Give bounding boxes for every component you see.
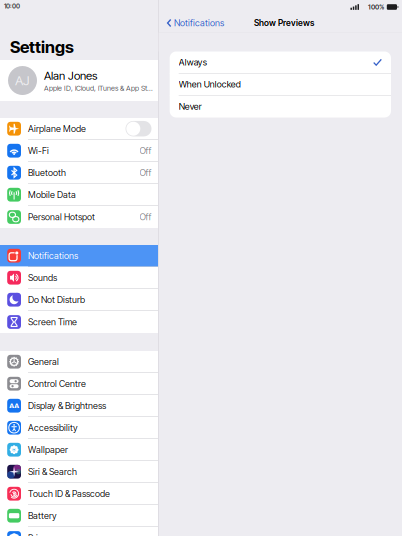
staticText: Wallpaper	[28, 444, 68, 455]
staticText: 10:00	[4, 2, 20, 10]
staticText: Sounds	[28, 272, 57, 283]
button[interactable]: Never	[170, 95, 391, 117]
button[interactable]: Personal Hotspot	[0, 206, 158, 228]
button[interactable]: Privacy	[0, 527, 158, 536]
staticText: Off	[139, 145, 151, 156]
button[interactable]: Airplane Mode	[0, 118, 158, 140]
staticText: Wi-Fi	[28, 145, 49, 156]
button[interactable]: Do Not Disturb	[0, 289, 158, 311]
staticText: Never	[179, 101, 202, 112]
button[interactable]: Touch ID & Passcode	[0, 483, 158, 505]
button[interactable]: AJ	[0, 60, 158, 101]
button[interactable]: Siri & Search	[0, 461, 158, 483]
staticText: Accessibility	[28, 422, 78, 433]
staticText: Show Previews	[254, 18, 314, 28]
staticText: Privacy	[28, 533, 56, 536]
staticText: Off	[139, 212, 151, 222]
button[interactable]: General	[0, 351, 158, 373]
button[interactable]: Battery	[0, 505, 158, 527]
button[interactable]: Notifications	[159, 14, 230, 32]
staticText: Battery	[28, 510, 57, 521]
staticText: 100%	[368, 3, 384, 11]
staticText: Siri & Search	[28, 466, 77, 477]
button[interactable]: Bluetooth	[0, 162, 158, 184]
button[interactable]: Always	[170, 51, 391, 73]
button[interactable]: Screen Time	[0, 311, 158, 333]
staticText: Settings	[10, 37, 74, 57]
button[interactable]: Wi-Fi	[0, 140, 158, 162]
staticText: AA	[9, 401, 19, 410]
button[interactable]: Mobile Data	[0, 184, 158, 206]
staticText: Alan Jones	[44, 69, 97, 82]
staticText: Mobile Data	[28, 189, 76, 200]
staticText: Notifications	[28, 250, 78, 261]
staticText: Personal Hotspot	[28, 212, 95, 222]
staticText: Display & Brightness	[28, 400, 106, 411]
button[interactable]: AA	[0, 395, 158, 417]
staticText: Bluetooth	[28, 167, 66, 178]
staticText: Touch ID & Passcode	[28, 488, 110, 499]
staticText: Screen Time	[28, 317, 77, 327]
button[interactable]: When Unlocked	[170, 73, 391, 95]
staticText: General	[28, 356, 59, 367]
staticText: When Unlocked	[179, 79, 241, 89]
staticText: Apple ID, iCloud, iTunes & App St...	[44, 84, 153, 92]
button[interactable]: Sounds	[0, 267, 158, 289]
staticText: Control Centre	[28, 378, 86, 389]
staticText: AJ	[15, 73, 30, 88]
button[interactable]: Control Centre	[0, 373, 158, 395]
button[interactable]: Accessibility	[0, 417, 158, 439]
staticText: Always	[179, 57, 207, 67]
staticText: Off	[139, 167, 151, 178]
button[interactable]: Wallpaper	[0, 439, 158, 461]
staticText: Do Not Disturb	[28, 294, 85, 305]
staticText: Notifications	[174, 18, 224, 28]
staticText: Airplane Mode	[28, 123, 86, 134]
button[interactable]: Notifications	[0, 245, 158, 267]
